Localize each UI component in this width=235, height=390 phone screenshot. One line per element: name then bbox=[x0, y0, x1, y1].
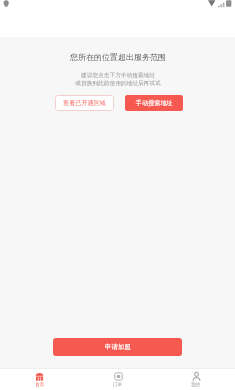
button[interactable]: 我的 bbox=[157, 372, 235, 388]
button[interactable]: 申请加盟 bbox=[53, 338, 182, 356]
staticText: 申请加盟 bbox=[105, 343, 131, 351]
staticText: 首页 bbox=[35, 382, 45, 388]
button[interactable]: 手动搜索地址 bbox=[125, 95, 183, 111]
button[interactable]: 首页 bbox=[0, 372, 79, 388]
staticText: 我的 bbox=[191, 382, 201, 388]
staticText: 您所在的位置超出服务范围 bbox=[70, 52, 166, 62]
staticText: 订单 bbox=[113, 382, 123, 388]
staticText: 建议您点击下方手动搜索地址 或切换到此前使用的地址后再试试 bbox=[75, 72, 161, 87]
staticText: 查看已开通区域 bbox=[63, 99, 106, 107]
button[interactable]: 订单 bbox=[79, 372, 157, 388]
staticText: 手动搜索地址 bbox=[136, 99, 173, 107]
button[interactable]: 查看已开通区域 bbox=[55, 95, 114, 111]
